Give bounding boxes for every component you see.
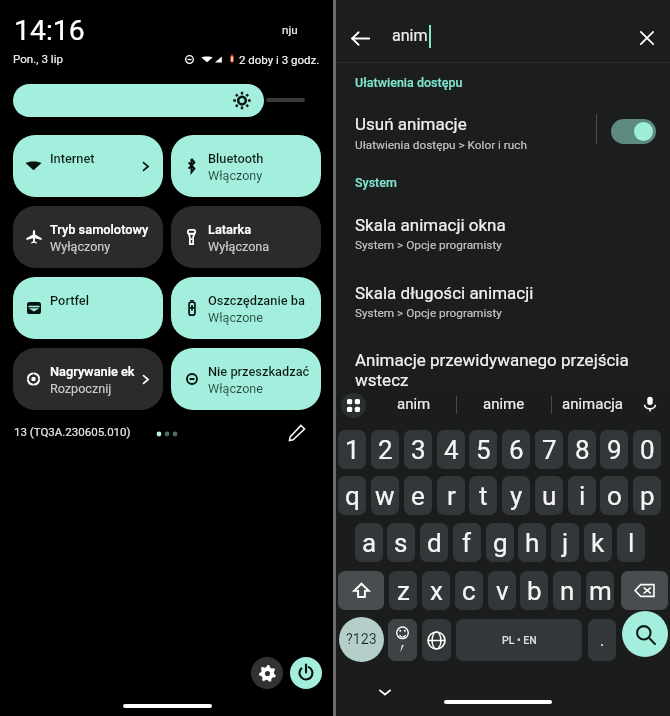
button[interactable]: 4 bbox=[437, 430, 465, 469]
button[interactable]: 2 bbox=[371, 430, 399, 469]
button[interactable]: anim bbox=[372, 387, 456, 421]
staticText: n bbox=[560, 576, 575, 606]
button[interactable]: Apps bbox=[341, 393, 366, 418]
button[interactable]: Back bbox=[341, 19, 379, 57]
button[interactable]: Search bbox=[622, 611, 668, 657]
button[interactable]: 6 bbox=[502, 430, 530, 469]
button[interactable]: q bbox=[338, 476, 366, 515]
button[interactable]: 9 bbox=[600, 430, 628, 469]
staticText: Wyłączona bbox=[208, 239, 313, 254]
staticText: Nie przeszkadzać bbox=[208, 364, 313, 379]
button[interactable]: g bbox=[486, 523, 514, 562]
staticText: 2 bbox=[378, 435, 393, 465]
staticText: 2 doby i 3 godz. bbox=[239, 53, 320, 66]
button[interactable]: n bbox=[553, 571, 581, 610]
staticText: 8 bbox=[575, 435, 590, 465]
button[interactable]: 0 bbox=[633, 430, 661, 469]
staticText: b bbox=[527, 576, 542, 606]
staticText: j bbox=[562, 528, 569, 558]
staticText: u bbox=[542, 481, 557, 511]
button[interactable]: Skala animacji okna bbox=[336, 211, 670, 255]
button[interactable]: Internet bbox=[13, 135, 163, 197]
button[interactable]: k bbox=[584, 523, 612, 562]
button[interactable]: Brightness bbox=[13, 84, 264, 117]
button[interactable]: f bbox=[453, 523, 481, 562]
button[interactable]: Tryb samolotowy bbox=[13, 206, 163, 268]
staticText: anim bbox=[397, 395, 431, 413]
staticText: 0 bbox=[640, 435, 655, 465]
button[interactable]: w bbox=[371, 476, 399, 515]
button[interactable]: u bbox=[535, 476, 563, 515]
button[interactable]: j bbox=[551, 523, 579, 562]
staticText: ?123 bbox=[346, 631, 377, 648]
button[interactable]: x bbox=[422, 571, 450, 610]
button[interactable]: 7 bbox=[535, 430, 563, 469]
button[interactable]: Toggle remove animations bbox=[611, 119, 656, 144]
button[interactable]: Oszczędzanie ba bbox=[171, 277, 321, 339]
button[interactable]: Usuń animacje bbox=[336, 110, 670, 156]
staticText: t bbox=[479, 481, 488, 511]
button[interactable]: s bbox=[387, 523, 415, 562]
button[interactable]: z bbox=[389, 571, 417, 610]
button[interactable]: animacja bbox=[552, 387, 633, 421]
button[interactable]: Settings bbox=[251, 657, 283, 689]
button[interactable]: Nie przeszkadzać bbox=[171, 348, 321, 410]
button[interactable]: Skala długości animacji bbox=[336, 279, 670, 323]
button[interactable]: PL • EN bbox=[456, 619, 582, 661]
staticText: s bbox=[394, 528, 408, 558]
staticText: c bbox=[462, 576, 476, 606]
staticText: 13 (TQ3A.230605.010) bbox=[14, 425, 131, 438]
staticText: anim bbox=[392, 26, 428, 45]
button[interactable]: 8 bbox=[568, 430, 596, 469]
staticText: anime bbox=[483, 395, 525, 413]
button[interactable]: 3 bbox=[404, 430, 432, 469]
button[interactable]: y bbox=[502, 476, 530, 515]
staticText: System bbox=[355, 175, 397, 190]
staticText: m bbox=[589, 576, 612, 606]
button[interactable]: p bbox=[633, 476, 661, 515]
button[interactable]: l bbox=[617, 523, 645, 562]
button[interactable]: Backspace bbox=[621, 571, 668, 610]
button[interactable]: Shift bbox=[338, 571, 384, 610]
button[interactable]: Emoji bbox=[388, 619, 417, 661]
button[interactable]: t bbox=[469, 476, 497, 515]
button[interactable]: o bbox=[600, 476, 628, 515]
button[interactable]: . bbox=[588, 619, 616, 661]
button[interactable]: Edit bbox=[282, 419, 312, 447]
staticText: 4 bbox=[444, 435, 459, 465]
staticText: . bbox=[600, 631, 605, 650]
staticText: h bbox=[525, 528, 540, 558]
button[interactable]: b bbox=[520, 571, 548, 610]
staticText: i bbox=[579, 481, 586, 511]
button[interactable]: anime bbox=[457, 387, 551, 421]
staticText: e bbox=[411, 481, 425, 511]
staticText: x bbox=[430, 576, 443, 606]
staticText: Bluetooth bbox=[208, 151, 313, 166]
button[interactable]: m bbox=[586, 571, 614, 610]
staticText: Wyłączony bbox=[50, 239, 155, 254]
staticText: Pon., 3 lip bbox=[13, 52, 64, 66]
button[interactable]: c bbox=[455, 571, 483, 610]
button[interactable]: ?123 bbox=[339, 617, 384, 662]
button[interactable]: v bbox=[488, 571, 516, 610]
button[interactable]: Voice input bbox=[636, 390, 664, 418]
button[interactable]: r bbox=[437, 476, 465, 515]
button[interactable]: i bbox=[568, 476, 596, 515]
button[interactable]: Latarka bbox=[171, 206, 321, 268]
button[interactable]: d bbox=[420, 523, 448, 562]
button[interactable]: Portfel bbox=[13, 277, 163, 339]
button[interactable]: 1 bbox=[338, 430, 366, 469]
button[interactable]: e bbox=[404, 476, 432, 515]
staticText: w bbox=[375, 481, 395, 511]
staticText: animacja bbox=[562, 395, 624, 413]
button[interactable]: a bbox=[355, 523, 383, 562]
button[interactable]: Clear search bbox=[628, 19, 666, 57]
button[interactable]: Change language bbox=[422, 619, 451, 661]
button[interactable]: Animacje przewidywanego przejścia wstecz bbox=[336, 346, 670, 390]
staticText: Skala długości animacji bbox=[355, 283, 534, 303]
button[interactable]: Nagrywanie ek bbox=[13, 348, 163, 410]
button[interactable]: 5 bbox=[469, 430, 497, 469]
button[interactable]: Power bbox=[290, 657, 322, 689]
button[interactable]: h bbox=[518, 523, 546, 562]
button[interactable]: Bluetooth bbox=[171, 135, 321, 197]
